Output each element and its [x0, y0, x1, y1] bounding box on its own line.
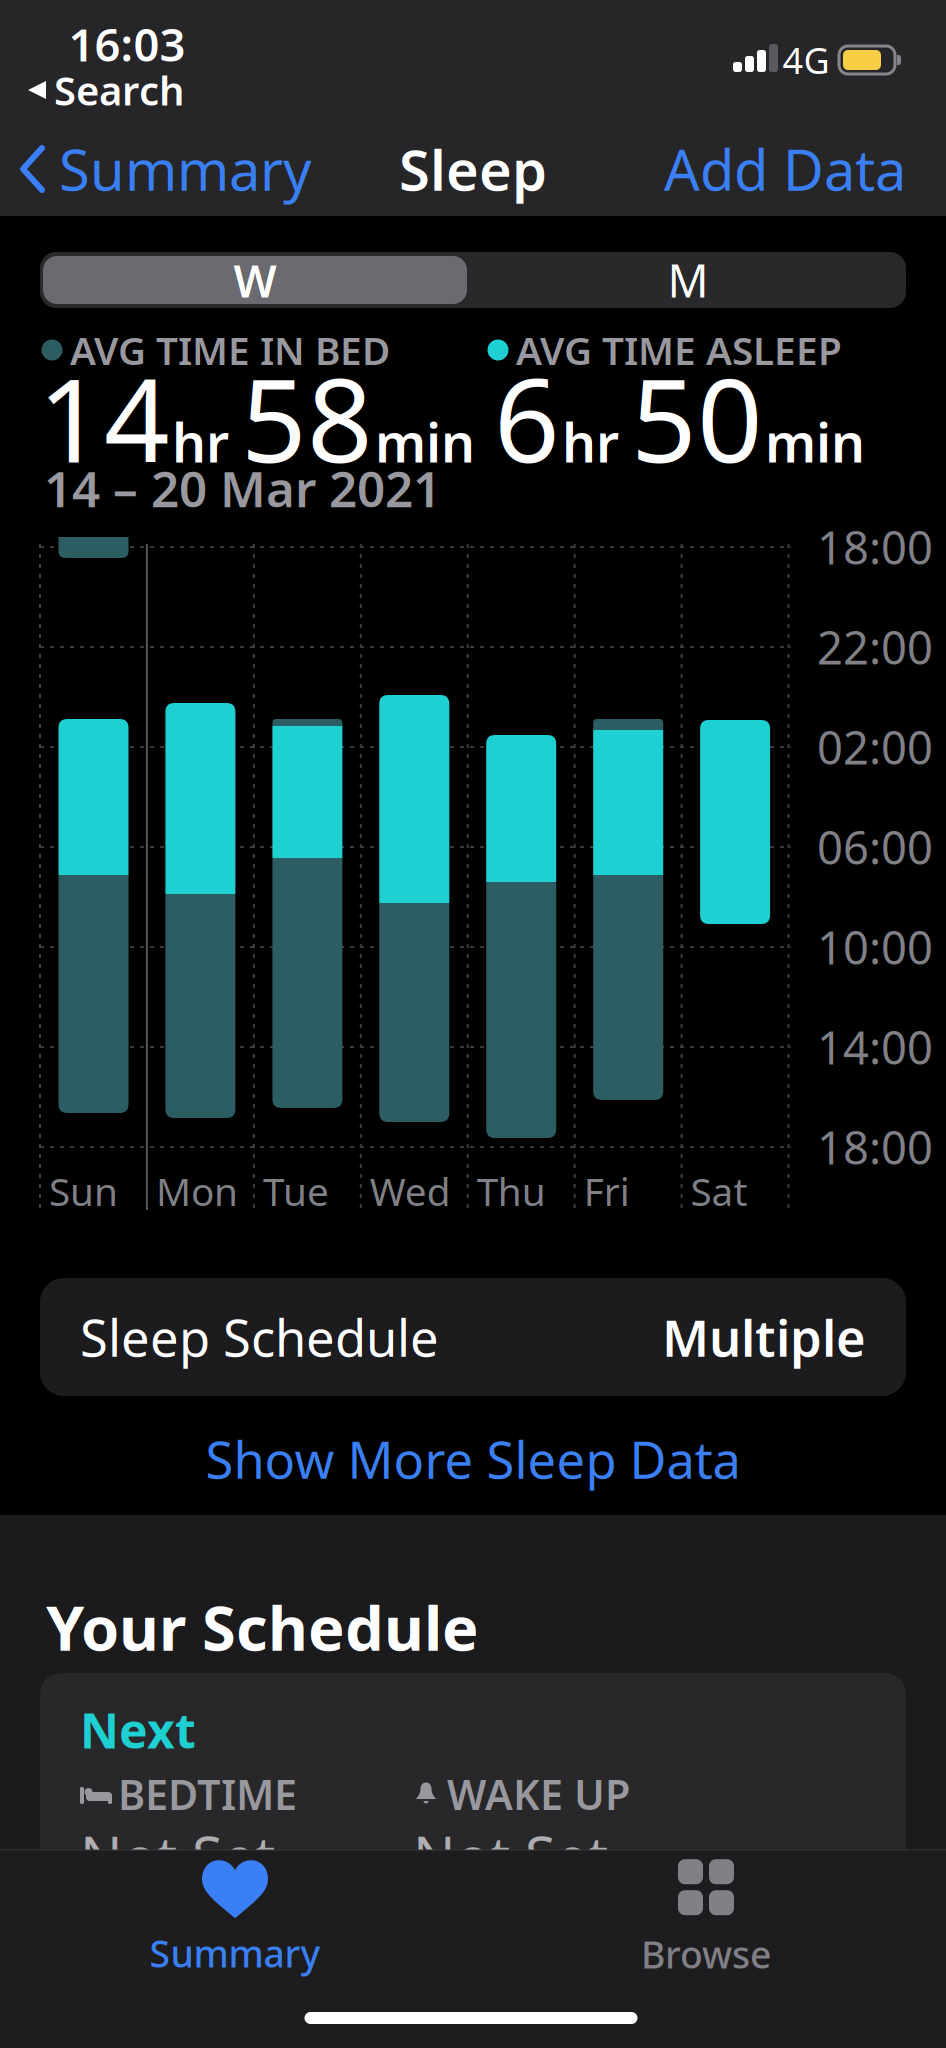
button[interactable]: Back to Summary: [20, 132, 360, 206]
staticText: Show More Sleep Data: [205, 1425, 740, 1493]
staticText: Summary: [59, 132, 312, 206]
staticText: BEDTIME: [118, 1767, 297, 1821]
staticText: Not Set: [80, 1819, 275, 1893]
staticText: 02:00: [817, 717, 933, 777]
staticText: 10:00: [817, 917, 933, 977]
button[interactable]: Back to Search: [28, 63, 228, 116]
staticText: AVG TIME IN BED: [70, 324, 390, 376]
staticText: AVG TIME ASLEEP: [516, 324, 842, 376]
staticText: Sleep: [399, 132, 547, 206]
button[interactable]: Add Data: [606, 132, 906, 206]
staticText: WAKE UP: [447, 1767, 630, 1821]
button[interactable]: Summary: [149, 1860, 320, 1978]
staticText: Browse: [641, 1929, 771, 1979]
staticText: min: [765, 406, 865, 477]
button[interactable]: Browse: [641, 1859, 771, 1979]
staticText: 6: [494, 342, 560, 494]
staticText: Summary: [149, 1928, 320, 1978]
staticText: 06:00: [817, 817, 933, 877]
staticText: Tue: [263, 1165, 329, 1217]
staticText: hr: [562, 406, 619, 477]
staticText: 14 – 20 Mar 2021: [44, 455, 441, 521]
button[interactable]: W: [43, 250, 467, 310]
staticText: Search: [54, 63, 185, 116]
staticText: Sat: [691, 1165, 748, 1217]
staticText: Add Data: [664, 132, 906, 206]
staticText: Mon: [156, 1165, 238, 1217]
staticText: 50: [631, 342, 763, 494]
staticText: Wed: [370, 1165, 451, 1217]
button[interactable]: Sleep Schedule: [40, 1278, 906, 1396]
staticText: 18:00: [817, 1117, 933, 1177]
staticText: Multiple: [662, 1303, 866, 1371]
staticText: 4G: [782, 36, 829, 84]
staticText: Fri: [584, 1165, 630, 1217]
staticText: 22:00: [817, 617, 933, 677]
staticText: 16:03: [68, 14, 185, 74]
staticText: min: [375, 406, 475, 477]
staticText: Thu: [477, 1165, 546, 1217]
staticText: 14: [38, 342, 170, 494]
staticText: hr: [172, 406, 229, 477]
button[interactable]: Show More Sleep Data: [205, 1425, 740, 1493]
staticText: Sun: [49, 1165, 118, 1217]
staticText: 58: [241, 342, 373, 494]
staticText: W: [233, 250, 276, 310]
staticText: Your Schedule: [46, 1586, 479, 1668]
staticText: 18:00: [817, 517, 933, 577]
staticText: Not Set: [413, 1819, 608, 1893]
staticText: Next: [80, 1698, 196, 1762]
staticText: 14:00: [817, 1017, 933, 1077]
staticText: Sleep Schedule: [80, 1303, 439, 1371]
button[interactable]: M: [476, 252, 900, 308]
staticText: M: [667, 250, 708, 310]
